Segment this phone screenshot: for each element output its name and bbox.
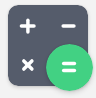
button[interactable]: Calculator xyxy=(8,5,88,86)
button[interactable]: Equals xyxy=(46,44,93,91)
